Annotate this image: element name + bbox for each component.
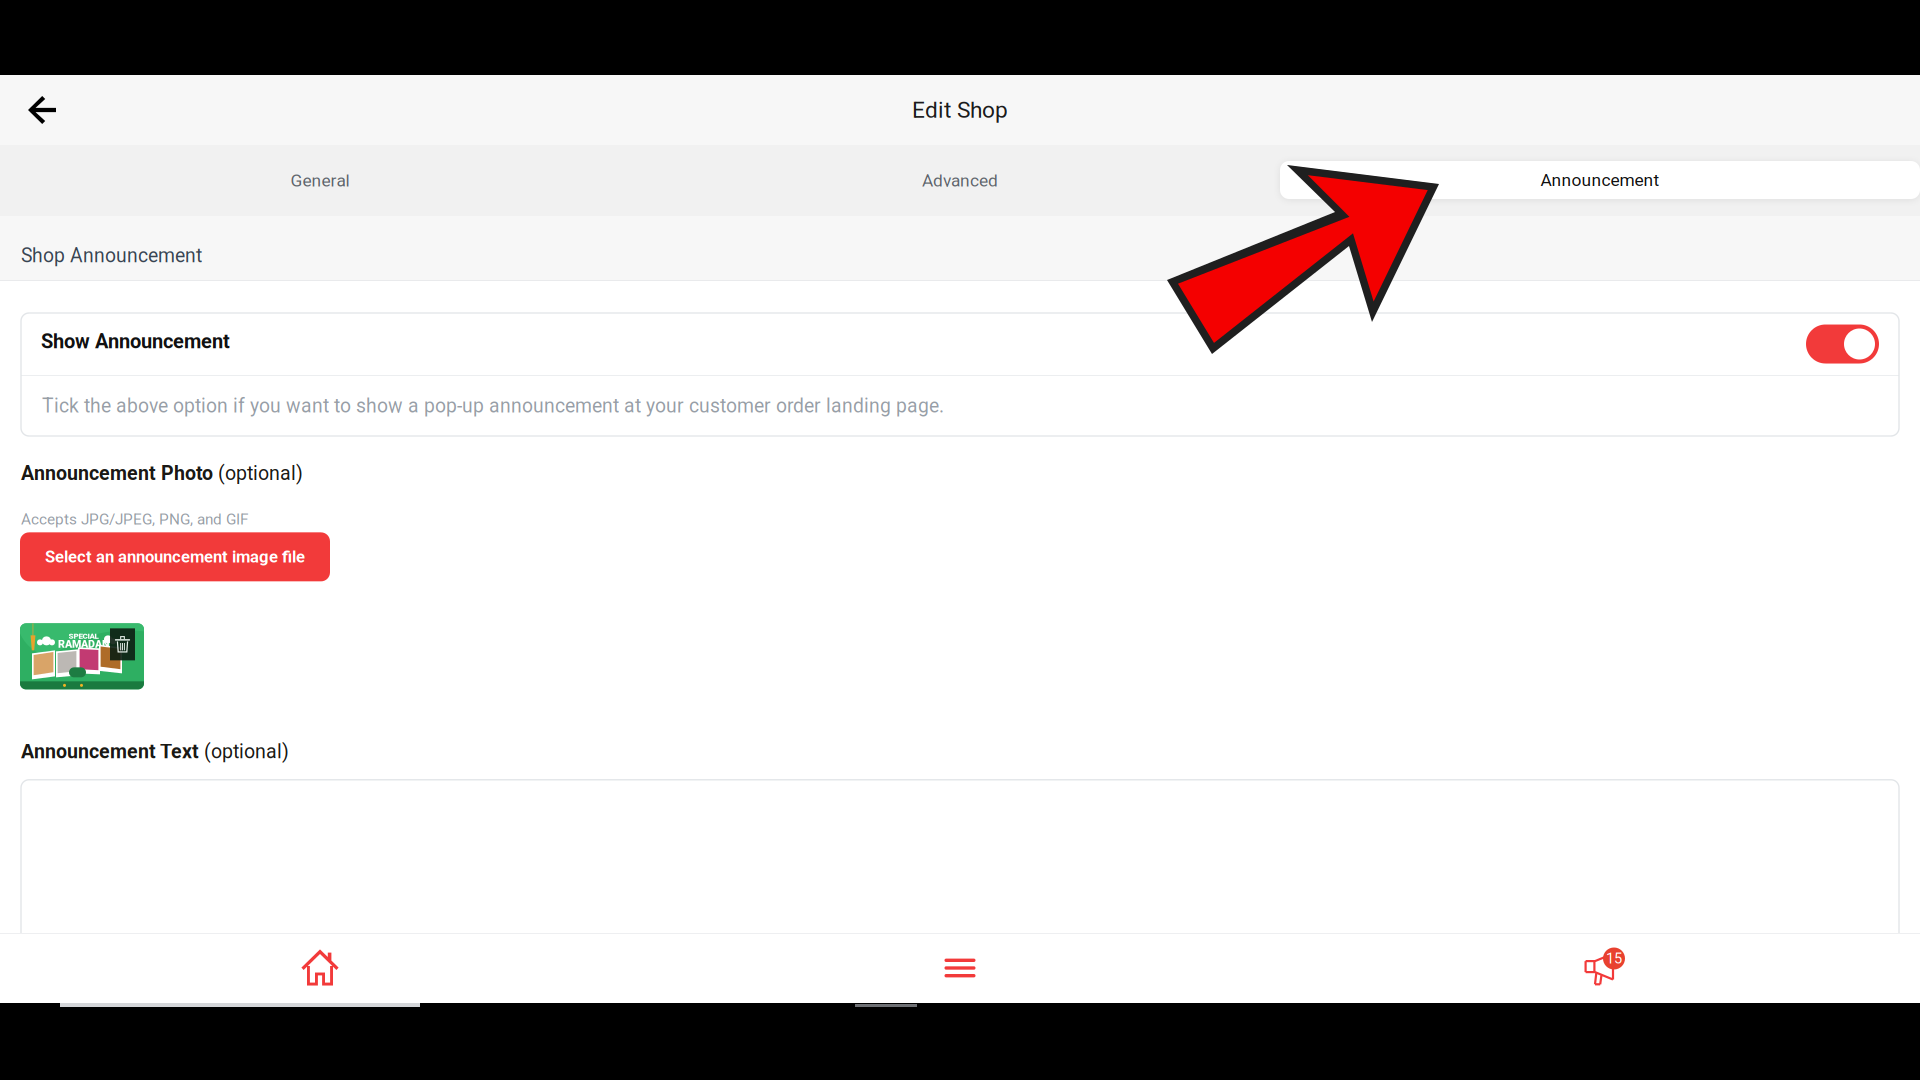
- staticText: Announcement: [1540, 170, 1659, 190]
- button[interactable]: Announcement: [1280, 145, 1920, 216]
- button[interactable]: General: [0, 145, 640, 216]
- staticText: Accepts JPG/JPEG, PNG, and GIF: [21, 510, 248, 528]
- staticText: Tick the above option if you want to sho…: [42, 395, 944, 417]
- staticText: Announcement Text (optional): [21, 740, 289, 763]
- staticText: RAMADAN: [58, 638, 109, 650]
- staticText: Announcement Photo (optional): [21, 462, 303, 484]
- staticText: 15: [1606, 950, 1622, 967]
- staticText: Select an announcement image file: [45, 547, 305, 567]
- staticText: General: [290, 170, 349, 191]
- button[interactable]: Remove announcement photo: [20, 623, 144, 689]
- button[interactable]: Menu: [640, 933, 1280, 1003]
- staticText: SPECIAL: [68, 631, 98, 641]
- staticText: Advanced: [922, 170, 998, 191]
- staticText: Show Announcement: [41, 330, 230, 353]
- button[interactable]: Home: [0, 933, 640, 1003]
- button[interactable]: Show Announcement: [1806, 324, 1879, 363]
- staticText: Shop Announcement: [21, 244, 202, 267]
- button[interactable]: Announcements, 15 unread: [1280, 933, 1920, 1003]
- button[interactable]: Back: [0, 75, 84, 145]
- staticText: Edit Shop: [912, 97, 1008, 123]
- button[interactable]: Select an announcement image file: [20, 532, 330, 581]
- button[interactable]: Advanced: [640, 145, 1280, 216]
